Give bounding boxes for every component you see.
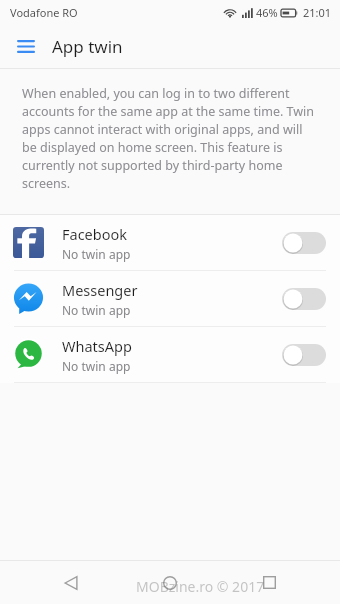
staticText: No twin app bbox=[62, 358, 131, 374]
staticText: No twin app bbox=[62, 302, 131, 318]
staticText: 46% bbox=[256, 5, 278, 20]
staticText: No twin app bbox=[62, 246, 131, 262]
staticText: MOBzine.ro © 2017 bbox=[136, 577, 265, 596]
button[interactable]: WhatsApp bbox=[0, 327, 340, 382]
staticText: WhatsApp bbox=[62, 336, 132, 356]
button[interactable]: Back bbox=[43, 561, 99, 604]
button[interactable]: Messenger bbox=[0, 271, 340, 326]
staticText: Messenger bbox=[62, 280, 138, 300]
staticText: Vodafone RO bbox=[10, 5, 78, 20]
staticText: Facebook bbox=[62, 224, 128, 244]
button[interactable]: Toggle twin app bbox=[282, 344, 326, 366]
button[interactable]: Toggle twin app bbox=[282, 288, 326, 310]
button[interactable]: Facebook bbox=[0, 215, 340, 270]
button[interactable]: Recents bbox=[241, 561, 297, 604]
staticText: 21:01 bbox=[303, 5, 332, 20]
button[interactable]: Menu bbox=[8, 28, 44, 64]
staticText: When enabled, you can log in to two diff… bbox=[22, 85, 316, 192]
button[interactable]: Toggle twin app bbox=[282, 232, 326, 254]
staticText: App twin bbox=[52, 35, 123, 58]
button[interactable]: Home bbox=[142, 561, 198, 604]
